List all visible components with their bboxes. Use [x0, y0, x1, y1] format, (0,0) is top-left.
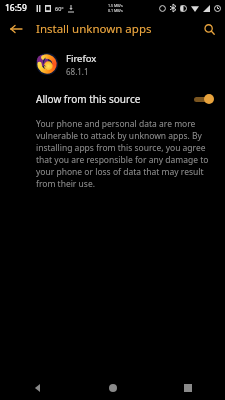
button[interactable]: Recent apps: [150, 376, 225, 400]
button[interactable]: Allow from this source: [0, 86, 225, 112]
staticText: Install unknown apps: [36, 21, 152, 37]
staticText: Your phone and personal data are more vu…: [36, 118, 213, 190]
button[interactable]: Back: [5, 18, 27, 40]
staticText: 0.1 MB/s: [108, 8, 123, 13]
button[interactable]: Firefox: [0, 48, 225, 80]
staticText: Firefox: [66, 52, 97, 65]
staticText: 68.1.1: [66, 66, 89, 77]
staticText: 60°: [55, 5, 64, 12]
staticText: Allow from this source: [36, 92, 193, 106]
staticText: 1.5 MB/s: [108, 3, 123, 8]
button[interactable]: Home: [75, 376, 150, 400]
staticText: 16:59: [5, 2, 27, 14]
button[interactable]: Back: [0, 376, 75, 400]
button[interactable]: Search: [198, 18, 220, 40]
